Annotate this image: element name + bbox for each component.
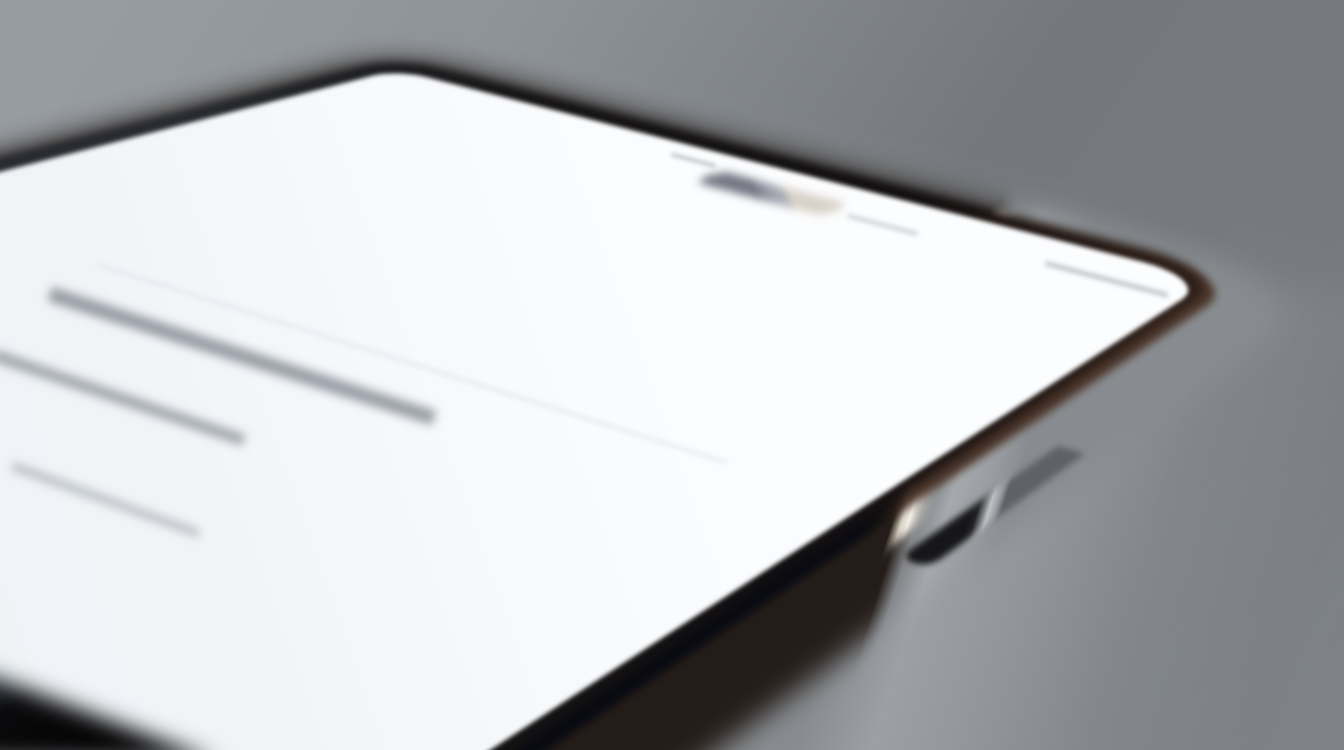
- button[interactable]: Smartphone photo: [0, 0, 1344, 750]
